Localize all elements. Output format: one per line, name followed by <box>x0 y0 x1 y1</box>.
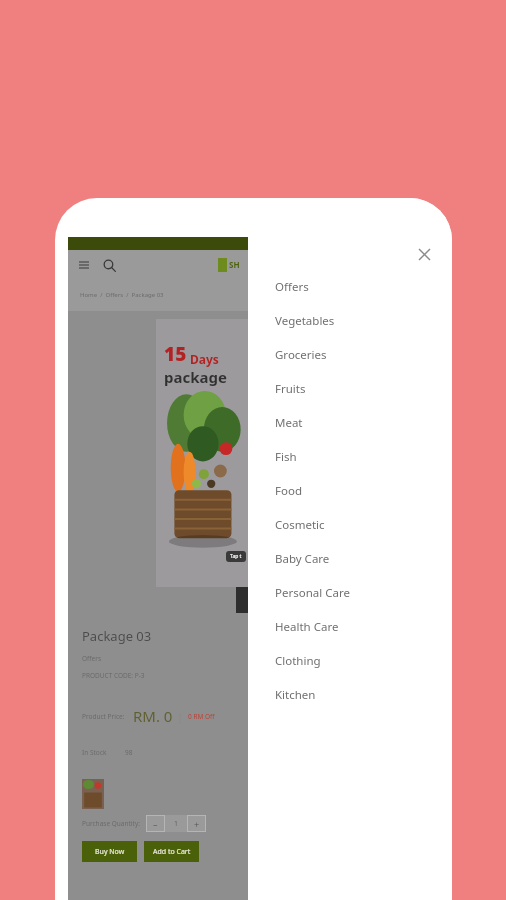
button[interactable]: Fish <box>248 440 452 474</box>
staticText: Package 03 <box>82 627 152 645</box>
staticText: Product Price: <box>82 712 125 721</box>
staticText: Purchase Quantity: <box>82 819 140 828</box>
staticText: Health Care <box>275 619 339 635</box>
button[interactable]: Offers <box>248 270 452 304</box>
button[interactable]: Food <box>248 474 452 508</box>
button[interactable]: Search <box>100 256 118 274</box>
button[interactable]: Close <box>412 242 436 266</box>
button[interactable]: Kitchen <box>248 678 452 712</box>
staticText: Baby Care <box>275 551 330 567</box>
button[interactable]: Buy Now <box>82 841 137 862</box>
button[interactable]: Fruits <box>248 372 452 406</box>
staticText: In Stock <box>82 748 107 757</box>
staticText: Vegetables <box>275 313 335 329</box>
button[interactable]: Cosmetic <box>248 508 452 542</box>
staticText: Fish <box>275 449 297 465</box>
staticText: – <box>153 818 158 830</box>
button[interactable]: Personal Care <box>248 576 452 610</box>
staticText: Tap t <box>230 553 242 560</box>
button[interactable]: Add to Cart <box>144 841 199 862</box>
staticText: Meat <box>275 415 303 431</box>
staticText: Offers <box>82 654 102 663</box>
staticText: Kitchen <box>275 687 316 703</box>
button[interactable]: Vegetables <box>248 304 452 338</box>
staticText: Personal Care <box>275 585 350 601</box>
button[interactable]: Clothing <box>248 644 452 678</box>
button[interactable]: Menu <box>76 257 92 273</box>
staticText: Fruits <box>275 381 306 397</box>
staticText: Food <box>275 483 302 499</box>
staticText: 15 <box>164 341 187 367</box>
staticText: 0 RM Off <box>188 712 215 721</box>
button[interactable]: Groceries <box>248 338 452 372</box>
staticText: package <box>164 367 227 387</box>
button[interactable]: Baby Care <box>248 542 452 576</box>
staticText: PRODUCT CODE: P-3 <box>82 671 145 680</box>
button[interactable]: Increase quantity <box>187 815 206 832</box>
staticText: + <box>194 818 200 830</box>
staticText: 1 <box>174 819 179 829</box>
staticText: Days <box>190 351 219 367</box>
staticText: RM. 0 <box>133 706 173 726</box>
staticText: Cosmetic <box>275 517 325 533</box>
staticText: Add to Cart <box>153 847 191 857</box>
button[interactable]: Decrease quantity <box>146 815 165 832</box>
button[interactable]: Meat <box>248 406 452 440</box>
button[interactable]: Health Care <box>248 610 452 644</box>
staticText: Clothing <box>275 653 321 669</box>
staticText: Offers <box>275 279 309 295</box>
staticText: Home / Offers / Package 03 <box>80 291 164 299</box>
staticText: Buy Now <box>95 847 125 857</box>
staticText: SH <box>229 259 240 270</box>
staticText: Groceries <box>275 347 327 363</box>
staticText: 98 <box>125 748 133 757</box>
